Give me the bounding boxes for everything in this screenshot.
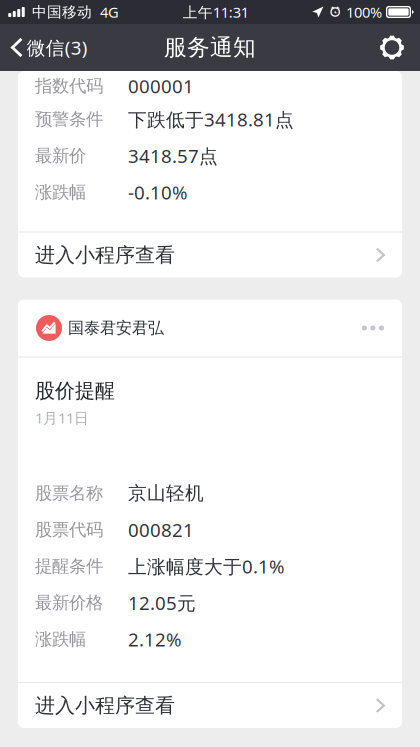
- staticText: -0.10%: [128, 180, 188, 205]
- staticText: 中国移动: [32, 3, 92, 21]
- staticText: 000001: [128, 74, 194, 98]
- staticText: 微信(3): [27, 35, 88, 60]
- staticText: 股价提醒: [35, 378, 115, 403]
- staticText: 2.12%: [128, 627, 182, 652]
- staticText: 上涨幅度大于0.1%: [128, 554, 285, 579]
- staticText: 股票代码: [35, 519, 103, 540]
- button[interactable]: 进入小程序查看: [18, 232, 402, 277]
- staticText: 4G: [100, 2, 119, 22]
- staticText: 下跌低于3418.81点: [128, 107, 294, 132]
- staticText: 提醒条件: [35, 556, 103, 577]
- staticText: 上午11:31: [183, 2, 249, 22]
- button[interactable]: Settings: [368, 24, 420, 71]
- staticText: 1月11日: [35, 408, 89, 428]
- staticText: 服务通知: [164, 34, 256, 61]
- staticText: 3418.57点: [128, 143, 218, 168]
- staticText: 预警条件: [35, 109, 103, 130]
- staticText: 最新价: [35, 145, 86, 166]
- staticText: 进入小程序查看: [35, 693, 175, 718]
- staticText: 12.05元: [128, 590, 196, 615]
- staticText: 指数代码: [35, 75, 103, 97]
- staticText: 100%: [346, 2, 382, 22]
- staticText: 进入小程序查看: [35, 243, 175, 267]
- staticText: 股票名称: [35, 483, 103, 504]
- staticText: 000821: [128, 517, 194, 542]
- button[interactable]: More: [348, 307, 388, 349]
- staticText: 京山轻机: [128, 482, 204, 505]
- staticText: 涨跌幅: [35, 629, 86, 650]
- staticText: 最新价格: [35, 592, 103, 613]
- staticText: 国泰君安君弘: [68, 318, 164, 338]
- staticText: 涨跌幅: [35, 182, 86, 203]
- button[interactable]: 进入小程序查看: [18, 683, 402, 728]
- button[interactable]: 微信(3): [0, 24, 98, 71]
